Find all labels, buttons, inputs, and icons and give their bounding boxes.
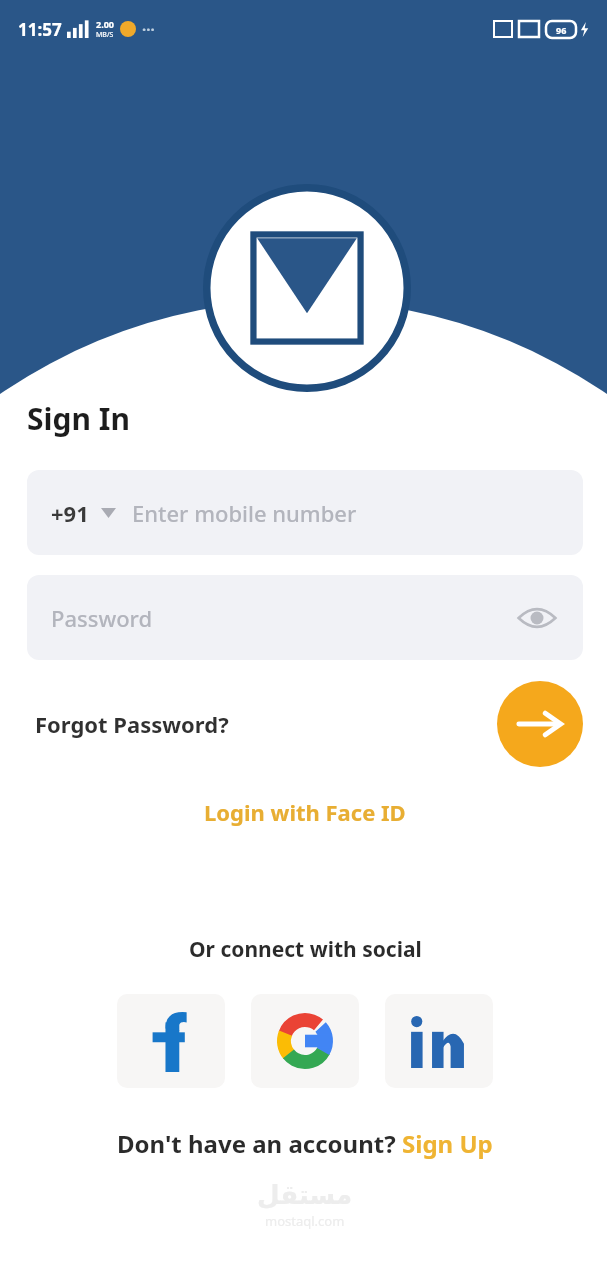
button[interactable]: Password: [27, 575, 583, 660]
staticText: MB/S: [96, 30, 114, 40]
staticText: 96: [556, 24, 567, 36]
button[interactable]: Login with Face ID: [196, 793, 414, 831]
button[interactable]: Sign in with LinkedIn: [385, 994, 493, 1088]
staticText: 2.00: [96, 18, 114, 30]
staticText: Login with Face ID: [204, 797, 406, 827]
staticText: Sign In: [27, 398, 130, 439]
button[interactable]: Show password: [515, 596, 559, 640]
staticText: Forgot Password?: [35, 709, 229, 739]
staticText: مستقل: [257, 1180, 353, 1210]
button[interactable]: Sign in with Facebook: [117, 994, 225, 1088]
staticText: mostaql.com: [265, 1212, 345, 1230]
button[interactable]: Sign in: [497, 681, 583, 767]
staticText: Password: [51, 603, 153, 633]
staticText: Don't have an account?: [117, 1127, 402, 1160]
staticText: Or connect with social: [189, 935, 422, 964]
staticText: +91: [51, 498, 89, 528]
button[interactable]: Don't have an account?: [111, 1123, 499, 1164]
staticText: ···: [142, 19, 155, 39]
staticText: Sign Up: [402, 1127, 493, 1160]
button[interactable]: Sign in with Google: [251, 994, 359, 1088]
button[interactable]: +91: [27, 470, 583, 555]
staticText: 11:57: [18, 18, 62, 41]
button[interactable]: Forgot Password?: [27, 703, 237, 745]
staticText: Enter mobile number: [132, 498, 357, 528]
